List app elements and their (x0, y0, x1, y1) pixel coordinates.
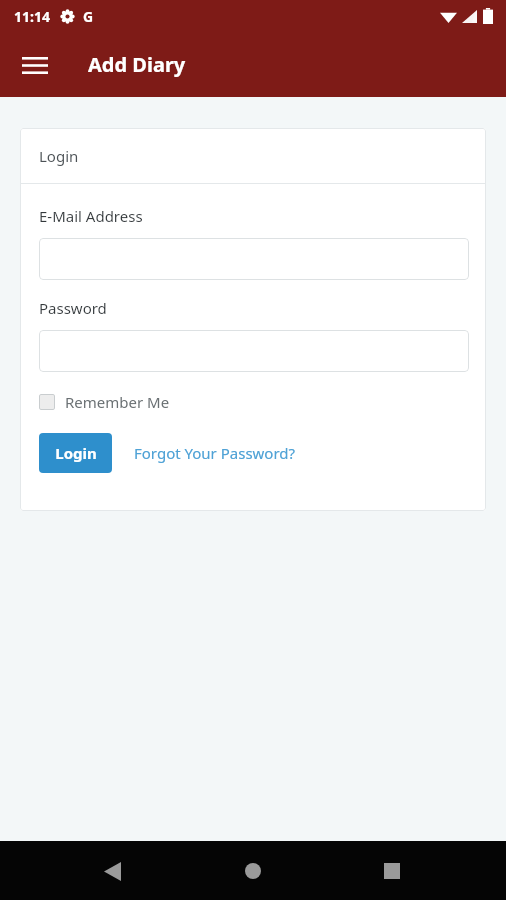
button[interactable]: Home (229, 847, 277, 895)
staticText: 11:14 (14, 7, 50, 26)
staticText: Login (55, 443, 97, 463)
button[interactable]: Forgot Your Password? (134, 443, 296, 463)
staticText: Add Diary (88, 51, 186, 78)
button[interactable]: Back (88, 847, 136, 895)
button[interactable] (39, 330, 469, 372)
button[interactable] (39, 238, 469, 280)
staticText: Remember Me (65, 392, 170, 412)
button[interactable]: Recent apps (368, 847, 416, 895)
staticText: Forgot Your Password? (134, 443, 296, 463)
button[interactable]: Login (39, 433, 112, 473)
staticText: E-Mail Address (39, 206, 143, 226)
staticText: Password (39, 298, 107, 318)
staticText: Login (39, 146, 79, 166)
button[interactable]: Open navigation menu (10, 40, 60, 90)
button[interactable]: Remember Me (39, 392, 170, 412)
staticText: G (83, 7, 94, 26)
